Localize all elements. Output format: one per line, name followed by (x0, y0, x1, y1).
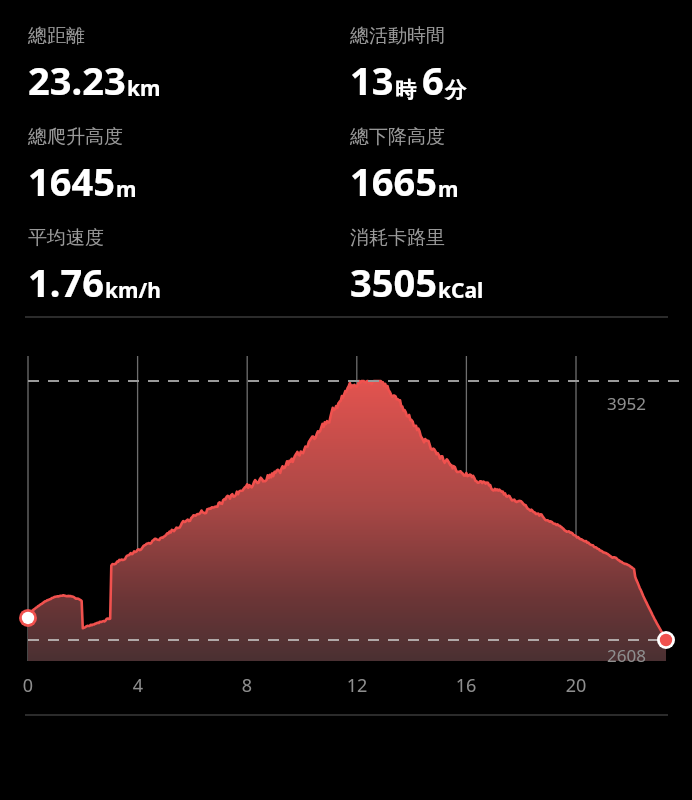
staticText: 總活動時間 (350, 24, 445, 48)
staticText: 總爬升高度 (28, 125, 123, 149)
staticText: 12 (337, 673, 377, 698)
staticText: kCal (438, 276, 484, 305)
staticText: 20 (556, 673, 596, 698)
button[interactable]: 平均速度 (28, 226, 350, 308)
staticText: 1645 (28, 155, 115, 207)
button[interactable]: 總爬升高度 (28, 125, 350, 207)
staticText: 1665 (350, 155, 437, 207)
staticText: 23.23 (28, 54, 126, 106)
button[interactable]: Elevation profile chart (0, 308, 692, 728)
staticText: km (127, 74, 161, 103)
staticText: 2608 (607, 644, 646, 667)
staticText: 消耗卡路里 (350, 226, 445, 250)
staticText: 時 (395, 77, 416, 103)
staticText: 總距離 (28, 24, 85, 48)
staticText: 6 (422, 54, 444, 106)
staticText: 平均速度 (28, 226, 104, 250)
staticText: 3505 (350, 256, 437, 308)
staticText: m (438, 175, 459, 204)
staticText: 4 (118, 673, 158, 698)
staticText: 16 (446, 673, 486, 698)
staticText: m (116, 175, 137, 204)
staticText: 13 (350, 54, 394, 106)
button[interactable]: 消耗卡路里 (350, 226, 484, 308)
staticText: km/h (105, 276, 161, 305)
staticText: 3952 (607, 392, 646, 415)
button[interactable]: 總距離 (28, 24, 350, 106)
staticText: 總下降高度 (350, 125, 445, 149)
staticText: 8 (227, 673, 267, 698)
button[interactable]: 總下降高度 (350, 125, 459, 207)
staticText: 0 (8, 673, 48, 698)
staticText: 分 (445, 77, 466, 103)
button[interactable]: 總活動時間 (350, 24, 466, 106)
staticText: 1.76 (28, 256, 104, 308)
